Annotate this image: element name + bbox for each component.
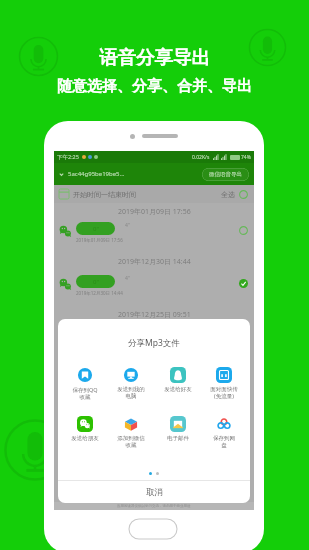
staticText: 2019年01月09日 17:56 <box>118 207 191 217</box>
button[interactable]: 电子邮件 <box>155 416 200 442</box>
staticText: 4" <box>125 275 130 282</box>
staticText: 2019年12月25日 09:51 <box>118 310 191 320</box>
staticText: 2019年01月09日 17:56 <box>76 237 123 243</box>
button[interactable]: 保存到网 盘 <box>201 416 246 448</box>
staticText: 微信语音导出 <box>209 171 242 178</box>
staticText: 0" <box>93 278 99 286</box>
button[interactable]: Back <box>58 171 65 178</box>
button[interactable]: 发送给好友 <box>155 367 200 393</box>
staticText: 0.02K/s <box>192 154 210 161</box>
button[interactable]: 开始时间一结束时间 <box>54 185 254 203</box>
staticText: 随意选择、分享、合并、导出 <box>57 77 252 96</box>
button[interactable]: 发送给朋友 <box>62 416 107 442</box>
button[interactable]: 0" <box>54 273 254 304</box>
staticText: 应用阅读器仅供以学习交流，请勿用于商业用途 <box>117 504 191 508</box>
button[interactable]: 保存到QQ 收藏 <box>62 367 107 400</box>
staticText: 保存到网 盘 <box>213 435 235 448</box>
staticText: 4" <box>125 222 130 229</box>
button[interactable]: 0" <box>54 220 254 251</box>
button[interactable]: 面对面快传 (免流量) <box>201 367 246 400</box>
button[interactable]: 微信语音导出 <box>202 168 249 181</box>
staticText: 全选 <box>221 190 235 199</box>
staticText: 电子邮件 <box>167 435 189 442</box>
staticText: 分享Mp3文件 <box>128 337 180 349</box>
staticText: 面对面快传 (免流量) <box>210 386 238 400</box>
staticText: 2019年12月30日 14:44 <box>118 257 191 267</box>
staticText: 取消 <box>146 487 163 498</box>
staticText: 添加到微信 收藏 <box>117 435 145 448</box>
staticText: 保存到QQ 收藏 <box>72 386 98 400</box>
button[interactable]: 发送到我的 电脑 <box>108 367 153 399</box>
staticText: 2019年12月30日 14:44 <box>76 290 123 296</box>
staticText: 5ac44g95be19be5... <box>68 170 125 178</box>
staticText: 发送给好友 <box>164 386 192 393</box>
button[interactable]: 添加到微信 收藏 <box>108 416 153 448</box>
staticText: 74% <box>241 154 251 161</box>
staticText: 语音分享导出 <box>99 46 210 69</box>
staticText: 发送给朋友 <box>71 435 99 442</box>
staticText: 开始时间一结束时间 <box>73 190 136 199</box>
staticText: 0" <box>93 225 99 233</box>
button[interactable]: 取消 <box>58 481 250 503</box>
staticText: 发送到我的 电脑 <box>117 386 145 399</box>
staticText: 下午2:25 <box>57 153 79 161</box>
